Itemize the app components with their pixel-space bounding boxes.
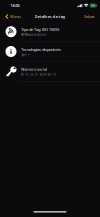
staticText: 14:06: [10, 3, 19, 8]
staticText: Detalhes da tag: [34, 14, 65, 19]
staticText: EM Microelectronic: [21, 33, 46, 36]
staticText: Tipo de Tag: ISO 15693: [21, 27, 59, 32]
staticText: Type V: [21, 53, 30, 56]
staticText: Número serial: [21, 66, 47, 72]
button[interactable]: Menu: [0, 11, 20, 22]
staticText: Salvar: [84, 14, 95, 19]
button[interactable]: Número serial: [0, 62, 100, 81]
staticText: Tecnologias disponíveis: [21, 47, 61, 52]
button[interactable]: Salvar: [84, 11, 100, 22]
button[interactable]: Tipo de Tag: ISO 15693: [0, 22, 100, 41]
staticText: Menu: [10, 14, 20, 19]
button[interactable]: Tecnologias disponíveis: [0, 42, 100, 61]
staticText: E0 16 3C 01 EE 64 E0 70: [21, 73, 56, 76]
